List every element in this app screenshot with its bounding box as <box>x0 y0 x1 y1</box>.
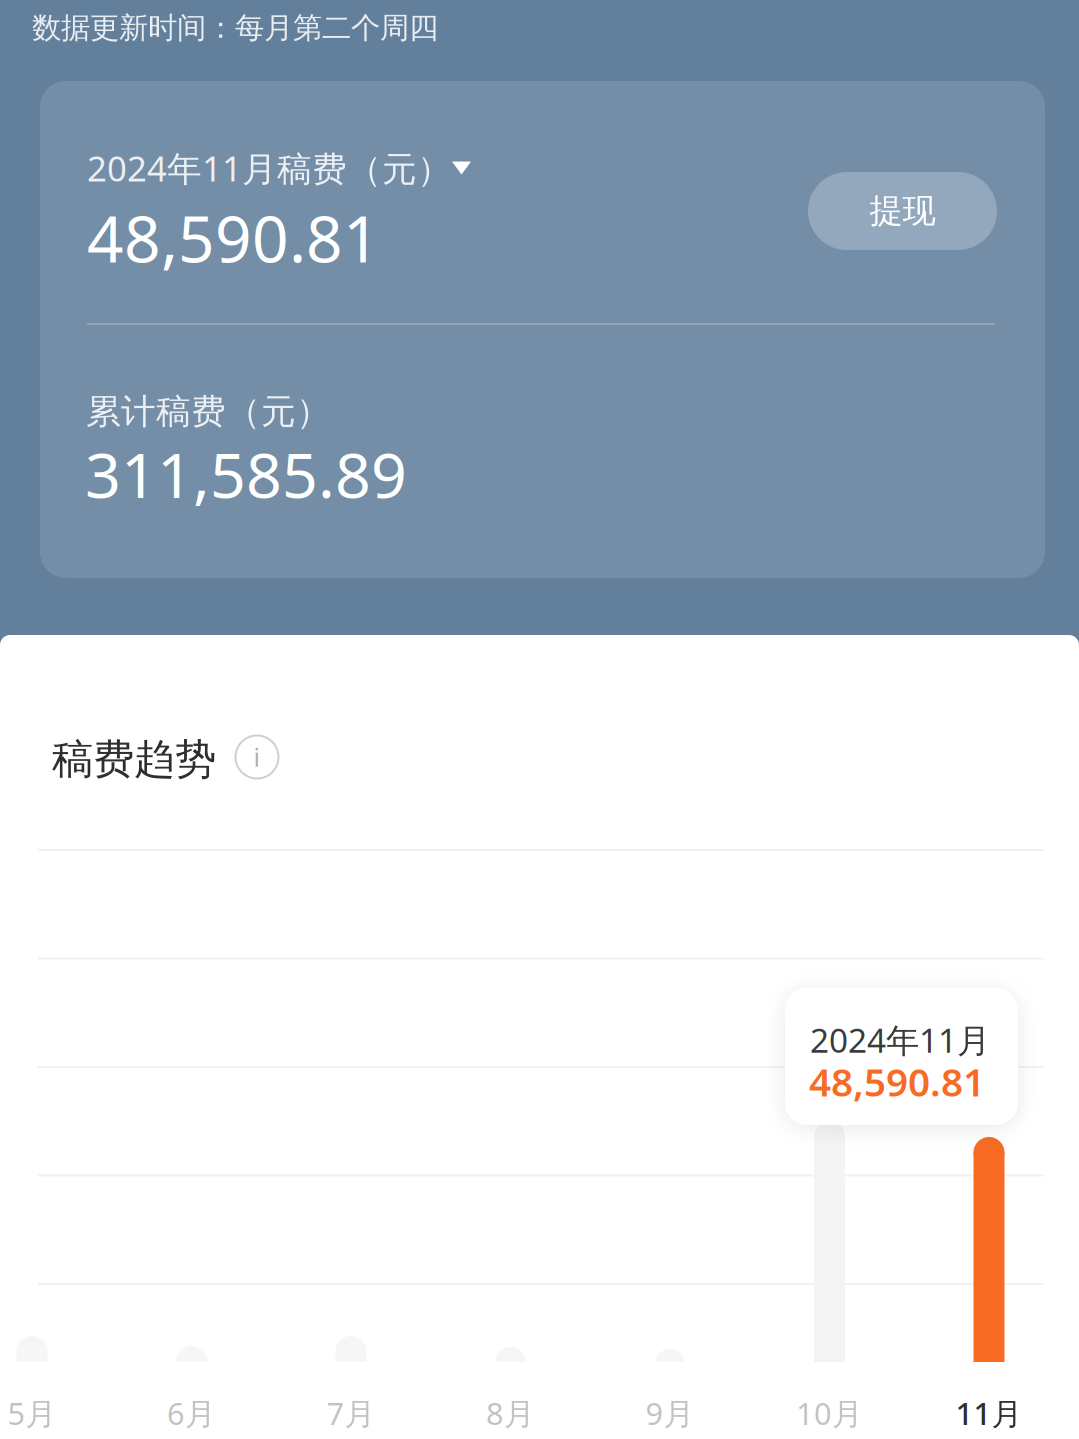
staticText: 9月 <box>645 1393 694 1433</box>
button[interactable]: 5月 <box>16 1336 47 1362</box>
button[interactable]: 8月 <box>486 1393 535 1433</box>
staticText: 48,590.81 <box>809 1056 985 1107</box>
staticText: 48,590.81 <box>87 195 380 280</box>
staticText: 6月 <box>167 1393 216 1433</box>
staticText: 11月 <box>955 1393 1022 1433</box>
staticText: 2024年11月 <box>810 1018 990 1062</box>
staticText: 10月 <box>796 1393 863 1433</box>
staticText: 311,585.89 <box>85 432 407 515</box>
button[interactable]: 5月 <box>7 1393 56 1433</box>
button[interactable]: 提现 <box>808 172 997 250</box>
button[interactable]: 2024年11月稿费（元） <box>87 141 557 195</box>
staticText: 7月 <box>326 1393 375 1433</box>
staticText: 8月 <box>486 1393 535 1433</box>
button[interactable]: 稿费趋势说明 <box>230 730 284 784</box>
button[interactable]: 9月 <box>654 1349 685 1362</box>
staticText: 提现 <box>869 190 935 231</box>
staticText: 2024年11月稿费（元） <box>87 145 452 191</box>
staticText: 5月 <box>7 1393 56 1433</box>
staticText: i <box>253 740 260 774</box>
button[interactable]: 6月 <box>167 1393 216 1433</box>
button[interactable]: 11月 <box>955 1393 1022 1433</box>
button[interactable]: 8月 <box>495 1347 526 1362</box>
button[interactable]: 11月 <box>973 1137 1004 1362</box>
button[interactable]: 7月 <box>326 1393 375 1433</box>
staticText: 数据更新时间：每月第二个周四 <box>32 10 438 46</box>
staticText: 累计稿费（元） <box>86 390 331 433</box>
staticText: 稿费趋势 <box>52 734 216 785</box>
button[interactable]: 10月 <box>796 1393 863 1433</box>
button[interactable]: 6月 <box>176 1346 207 1362</box>
button[interactable]: 9月 <box>645 1393 694 1433</box>
